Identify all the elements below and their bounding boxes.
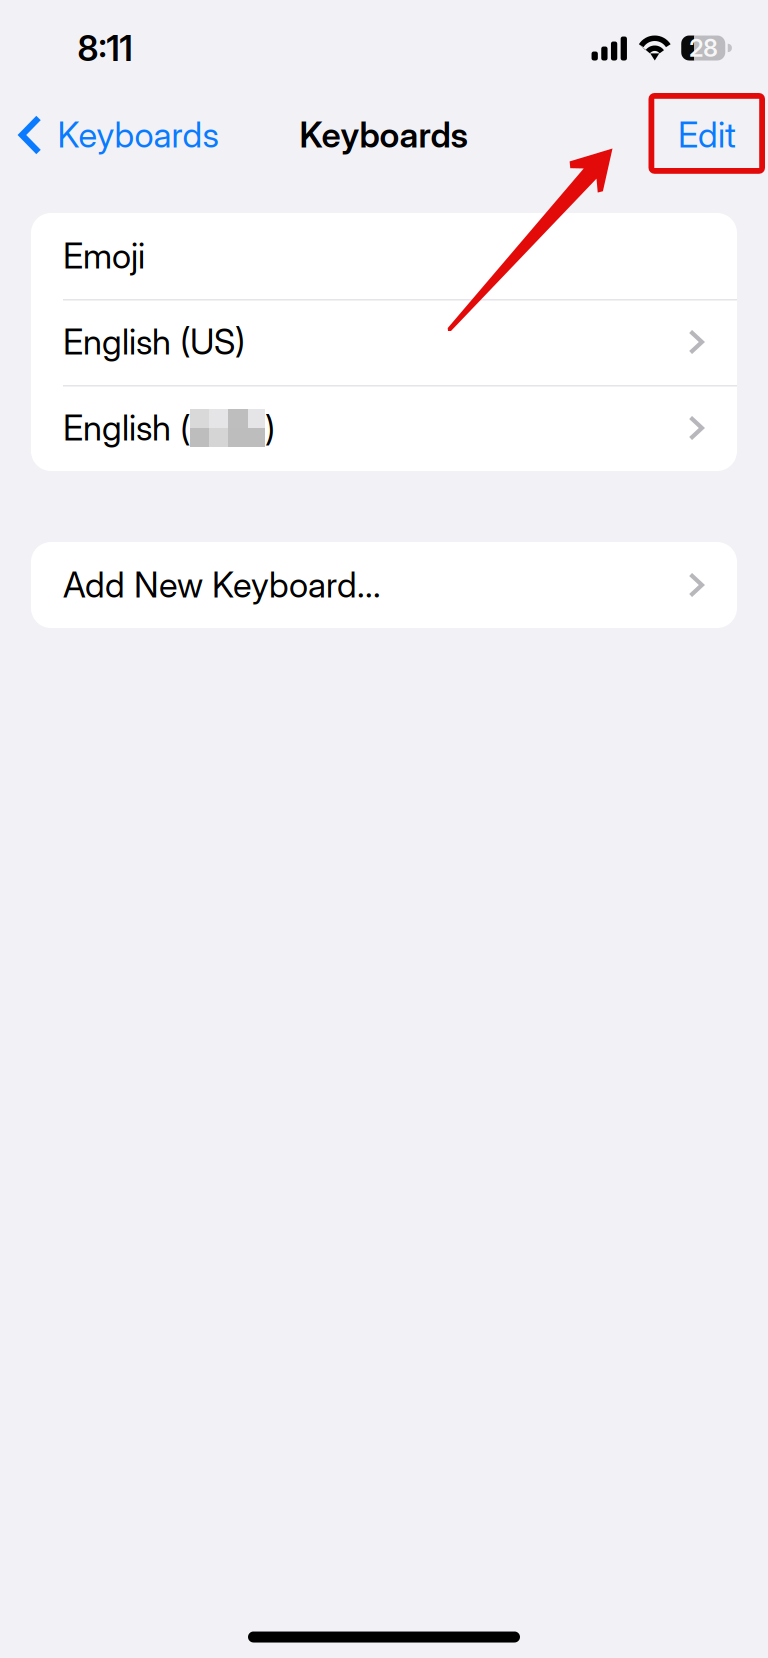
staticText: English ( [63,407,190,449]
button[interactable]: Emoji [31,213,737,299]
staticText: 8:11 [77,27,132,69]
button[interactable]: English ( [31,385,737,471]
button[interactable]: Keyboards [0,100,232,170]
staticText: Add New Keyboard... [63,564,381,606]
staticText: 28 [689,33,717,62]
staticText: Emoji [63,235,145,277]
staticText: Edit [678,114,736,156]
button[interactable]: Add New Keyboard... [31,542,737,628]
button[interactable]: English (US) [31,299,737,385]
staticText: Keyboards [299,114,468,156]
staticText: English (US) [63,321,245,363]
staticText: ) [265,407,275,449]
button[interactable]: Edit [652,100,762,170]
staticText: Keyboards [57,114,218,156]
